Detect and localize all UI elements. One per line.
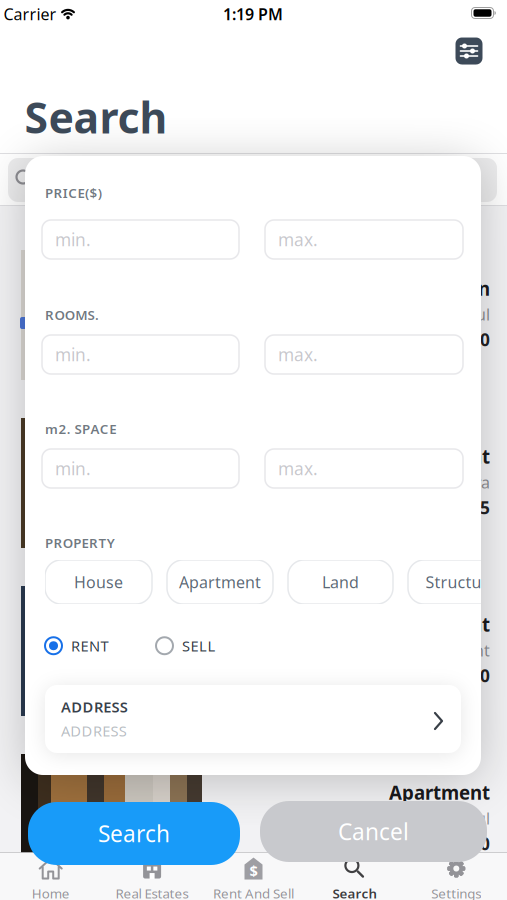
staticText: ROOMS. <box>45 306 99 324</box>
staticText: Home <box>32 884 70 900</box>
staticText: Rent And Sell <box>213 884 294 900</box>
staticText: Search <box>98 818 170 848</box>
staticText: Carrier <box>3 3 56 25</box>
button[interactable]: SELL <box>156 636 215 655</box>
staticText: 250.000 <box>425 328 490 351</box>
button[interactable]: Filters <box>455 37 482 64</box>
staticText: PROPERTY <box>45 534 115 552</box>
staticText: $ <box>249 861 257 880</box>
button[interactable]: Home <box>0 853 101 900</box>
button[interactable]: Settings <box>406 853 507 900</box>
staticText: Real Estates <box>116 884 189 900</box>
button[interactable]: Structure <box>408 560 507 604</box>
staticText: Rent <box>455 640 490 661</box>
staticText: ADDRESS <box>61 697 128 716</box>
button[interactable]: House <box>45 560 152 604</box>
staticText: max. <box>278 457 318 480</box>
staticText: min. <box>55 457 91 480</box>
staticText: Apartment <box>389 444 490 469</box>
staticText: Ankara <box>437 472 490 493</box>
staticText: Search <box>24 89 167 145</box>
staticText: 1.345 <box>445 496 490 519</box>
button[interactable]: ADDRESS <box>45 685 461 753</box>
staticText: RENT <box>71 636 108 655</box>
staticText: Apartment <box>389 780 490 805</box>
staticText: Land <box>322 571 359 593</box>
staticText: Apartment <box>389 612 490 637</box>
staticText: max. <box>278 343 318 366</box>
staticText: Istanbul <box>428 304 490 325</box>
staticText: PRICE($) <box>45 184 102 202</box>
button[interactable]: RENT <box>45 636 108 655</box>
staticText: Settings <box>431 884 481 900</box>
staticText: m2. SPACE <box>45 420 116 438</box>
staticText: Apartment <box>179 571 261 593</box>
button[interactable]: Search <box>304 853 406 900</box>
staticText: 175.000 <box>425 832 490 855</box>
button[interactable]: Cancel <box>260 801 487 862</box>
staticText: Apartman <box>397 276 490 301</box>
button[interactable]: $ <box>203 853 304 900</box>
staticText: ADDRESS <box>61 721 127 740</box>
staticText: 1:19 PM <box>223 3 283 25</box>
button[interactable]: Apartment <box>167 560 273 604</box>
staticText: Istanbul <box>428 808 490 829</box>
staticText: min. <box>55 343 91 366</box>
button[interactable]: Land <box>288 560 393 604</box>
button[interactable]: Search <box>28 802 240 865</box>
staticText: Structure <box>425 571 496 593</box>
staticText: Cancel <box>338 816 409 846</box>
staticText: House <box>74 571 123 593</box>
staticText: max. <box>278 228 318 251</box>
staticText: min. <box>55 228 91 251</box>
staticText: 100.000 <box>425 664 490 687</box>
button[interactable]: Search field <box>8 158 497 202</box>
staticText: SELL <box>182 636 215 655</box>
button[interactable]: Real Estates <box>101 853 203 900</box>
staticText: Search <box>332 884 377 900</box>
